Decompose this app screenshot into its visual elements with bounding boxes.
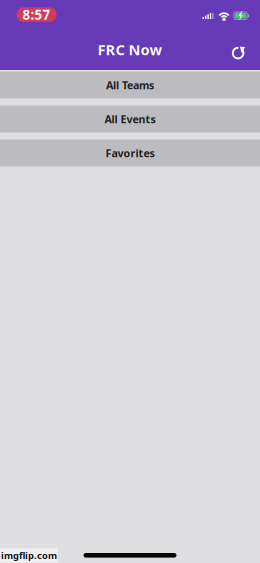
staticText: Favorites	[105, 146, 154, 160]
button[interactable]: Favorites	[0, 139, 260, 166]
button[interactable]: All Events	[0, 105, 260, 132]
staticText: All Teams	[106, 78, 154, 92]
staticText: FRC Now	[97, 40, 162, 59]
staticText: All Events	[104, 112, 155, 126]
button[interactable]: Refresh	[223, 33, 255, 65]
button[interactable]: All Teams	[0, 71, 260, 98]
staticText: imgflip.com	[1, 549, 57, 562]
staticText: 8:57	[22, 6, 50, 23]
